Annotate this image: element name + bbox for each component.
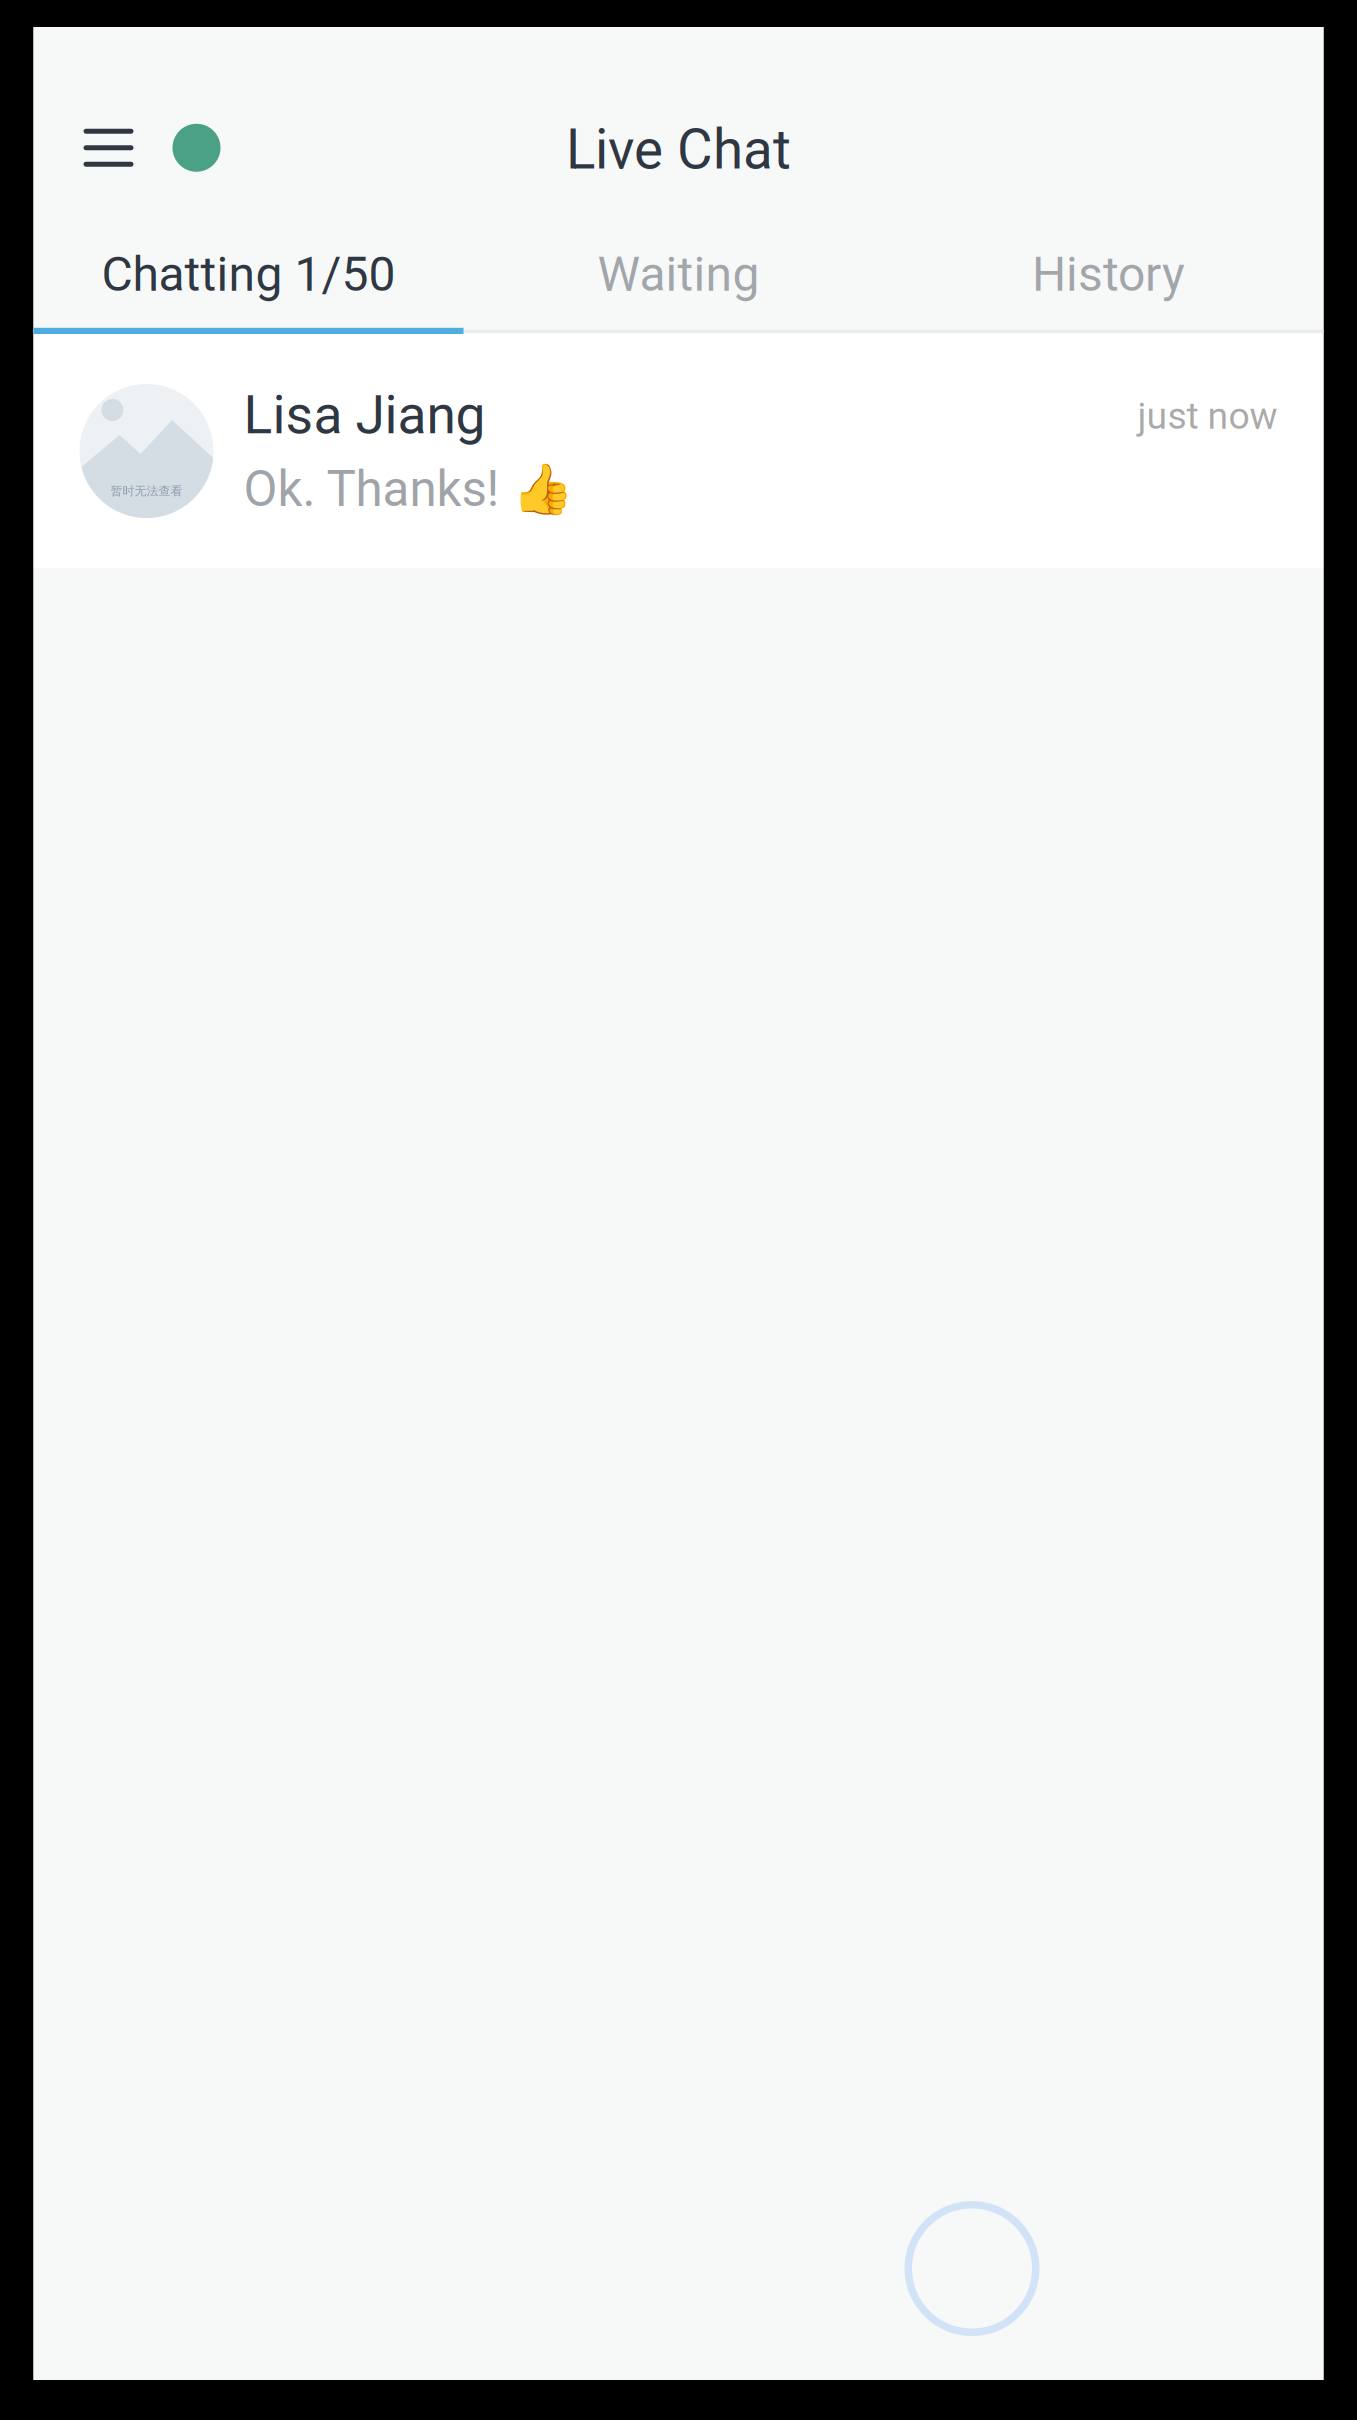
button[interactable]: Menu xyxy=(33,108,250,192)
button[interactable]: Waiting xyxy=(463,213,893,333)
staticText: Live Chat xyxy=(566,118,791,182)
staticText: Ok. Thanks! 👍 xyxy=(243,460,572,518)
staticText: just now xyxy=(1137,394,1277,438)
button[interactable]: Chatting 1/50 xyxy=(33,213,463,333)
staticText: Lisa Jiang xyxy=(243,384,485,446)
staticText: History xyxy=(1032,246,1185,302)
button[interactable]: Lisa Jiang, Ok. Thanks! 👍, just now xyxy=(33,334,1323,568)
button[interactable]: New chat xyxy=(904,2201,1039,2336)
staticText: Waiting xyxy=(597,246,759,302)
button[interactable]: History xyxy=(893,213,1323,333)
staticText: Chatting 1/50 xyxy=(101,246,395,302)
